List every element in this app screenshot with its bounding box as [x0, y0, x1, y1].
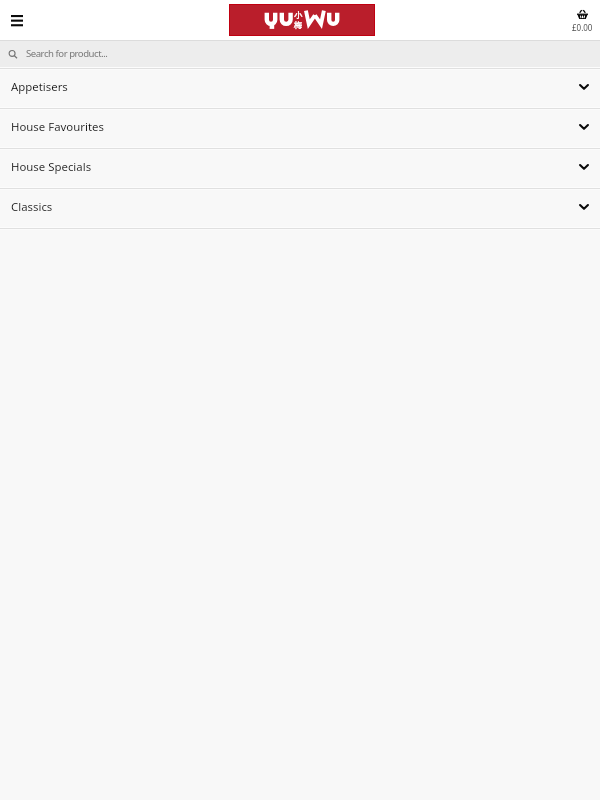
button[interactable]: Appetisers	[0, 70, 600, 107]
button[interactable]: Search for product...	[0, 40, 600, 67]
button[interactable]: House Favourites	[0, 110, 600, 147]
staticText: House Favourites	[11, 119, 104, 135]
staticText: 小	[294, 10, 302, 20]
staticText: 梅	[294, 20, 302, 30]
button[interactable]: House Specials	[0, 150, 600, 187]
staticText: Classics	[11, 199, 53, 215]
staticText: House Specials	[11, 159, 92, 175]
staticText: Appetisers	[11, 79, 68, 95]
button[interactable]: Classics	[0, 190, 600, 227]
staticText: £0.00	[572, 22, 593, 33]
button[interactable]: Basket	[568, 6, 596, 34]
button[interactable]: Menu	[2, 6, 30, 34]
staticText: Search for product...	[26, 47, 108, 60]
button[interactable]: 小	[230, 5, 374, 35]
